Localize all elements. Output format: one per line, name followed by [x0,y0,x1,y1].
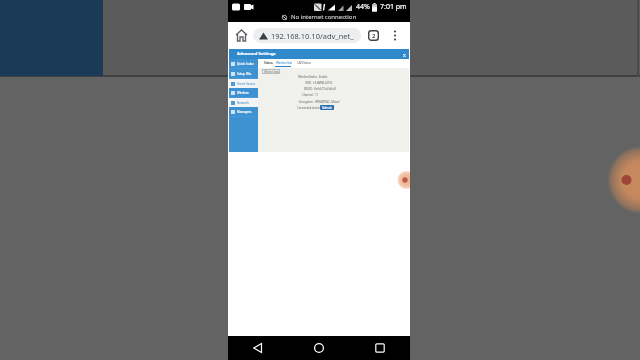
button[interactable]: Refresh [320,105,334,110]
staticText: Network [237,101,250,105]
button[interactable]: Managem. [229,107,258,116]
button[interactable]: Quick Index [229,59,258,68]
staticText: 7:01 pm [380,2,407,12]
button[interactable]: Network [229,98,258,107]
staticText: LAN Status [297,61,311,65]
staticText: 44% [356,2,370,12]
staticText: Setup Wiz. [237,72,252,76]
staticText: Status [264,61,273,65]
staticText: Connected devices : 3 [297,106,325,110]
button[interactable]: Home Status [229,79,258,88]
staticText: SSID : HUAWEI-k2Ts5 [305,81,333,85]
button[interactable] [235,29,248,42]
staticText: 192.168.10.10/adv_net_ [271,31,354,41]
staticText: Quick Index [237,62,254,66]
staticText: Encryption : WPA/WPA2 - Mixed [299,100,340,104]
button[interactable] [391,29,399,42]
staticText: Refresh [322,106,333,110]
button[interactable] [288,336,349,360]
button[interactable] [349,336,410,360]
staticText: x [403,51,406,58]
staticText: No internet connection [291,13,357,21]
staticText: Wireless Stat [276,61,292,65]
button[interactable]: 2 [368,30,379,41]
staticText: BSSID : 8c:6d:77:a2:b4:c8 [304,87,336,91]
staticText: Home Status [237,82,256,86]
staticText: 2 [372,32,376,40]
button[interactable]: Setup Wiz. [229,69,258,78]
staticText: Channel : 11 [302,93,319,97]
staticText: Managem. [237,110,253,114]
button[interactable]: 192.168.10.10/adv_net_ [253,28,361,43]
staticText: Advanced Settings [237,51,276,57]
staticText: Wireless Radio : Enable [298,75,328,79]
button[interactable]: Wireless [229,88,258,97]
staticText: Wireless Status [264,70,281,74]
staticText: Wireless [237,91,249,95]
button[interactable] [228,336,288,360]
